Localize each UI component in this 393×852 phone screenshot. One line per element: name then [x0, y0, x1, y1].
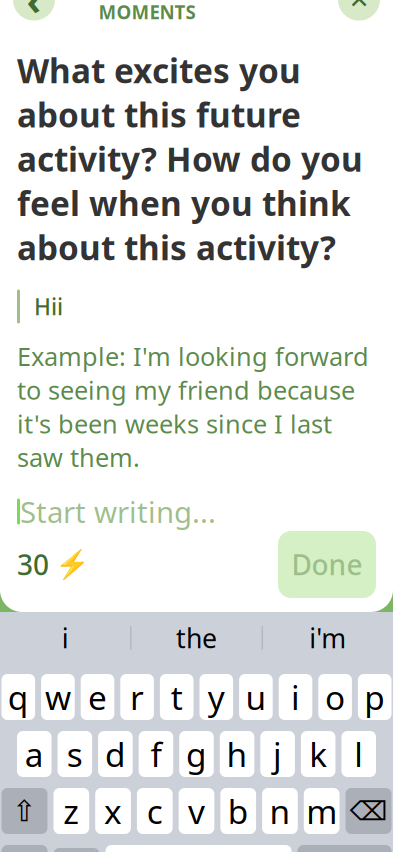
button[interactable]: j: [260, 731, 295, 777]
button[interactable]: l: [341, 731, 376, 777]
staticText: ⌫: [349, 796, 387, 826]
button[interactable]: w: [41, 674, 75, 720]
button[interactable]: Shift: [1, 788, 47, 834]
button[interactable]: 123: [1, 845, 47, 852]
button[interactable]: m: [304, 788, 339, 834]
staticText: r: [130, 675, 144, 719]
staticText: f: [150, 732, 161, 776]
button[interactable]: a: [17, 731, 52, 777]
button[interactable]: q: [1, 674, 35, 720]
staticText: l: [354, 732, 363, 776]
staticText: y: [208, 675, 225, 719]
staticText: z: [63, 789, 79, 833]
staticText: v: [188, 789, 205, 833]
staticText: i: [291, 675, 300, 719]
staticText: i'm: [309, 620, 346, 656]
button[interactable]: r: [120, 674, 154, 720]
button[interactable]: c: [137, 788, 173, 834]
staticText: Hii: [34, 291, 63, 321]
staticText: p: [364, 675, 385, 719]
button[interactable]: d: [98, 731, 133, 777]
staticText: w: [45, 675, 71, 719]
button[interactable]: Emoji: [53, 848, 99, 852]
staticText: e: [88, 675, 107, 719]
staticText: Example: I'm looking forward to seeing m…: [17, 339, 369, 474]
staticText: q: [8, 675, 29, 719]
staticText: What excites you about this future activ…: [17, 48, 363, 269]
button[interactable]: t: [160, 674, 193, 720]
button[interactable]: h: [220, 731, 254, 777]
staticText: the: [176, 620, 217, 656]
staticText: Start writing...: [20, 492, 216, 531]
button[interactable]: e: [81, 674, 114, 720]
staticText: m: [306, 789, 337, 833]
staticText: c: [147, 789, 163, 833]
button[interactable]: Close: [338, 0, 380, 21]
button[interactable]: g: [179, 731, 214, 777]
staticText: s: [67, 732, 83, 776]
button[interactable]: k: [301, 731, 335, 777]
staticText: ⇧: [12, 794, 37, 828]
staticText: ✕: [348, 0, 369, 14]
staticText: n: [269, 789, 290, 833]
button[interactable]: z: [53, 788, 89, 834]
staticText: h: [227, 732, 248, 776]
button[interactable]: Delete: [345, 788, 391, 834]
button[interactable]: return: [297, 845, 391, 852]
button[interactable]: i: [0, 612, 130, 664]
button[interactable]: the: [131, 612, 262, 664]
button[interactable]: i'm: [263, 612, 393, 664]
button[interactable]: f: [139, 731, 173, 777]
button[interactable]: n: [262, 788, 298, 834]
staticText: k: [309, 732, 327, 776]
button[interactable]: i: [279, 674, 312, 720]
staticText: ‹: [26, 0, 41, 26]
staticText: j: [273, 732, 282, 776]
staticText: t: [171, 675, 183, 719]
button[interactable]: b: [220, 788, 256, 834]
button[interactable]: p: [358, 674, 391, 720]
staticText: i: [62, 620, 69, 656]
staticText: SAVORING PLEASANT MOMENTS: [98, 0, 294, 24]
staticText: b: [228, 789, 249, 833]
button[interactable]: o: [318, 674, 352, 720]
staticText: g: [186, 732, 207, 776]
button[interactable]: u: [239, 674, 273, 720]
button[interactable]: Done: [278, 531, 376, 598]
button[interactable]: v: [179, 788, 214, 834]
staticText: d: [105, 732, 126, 776]
button[interactable]: y: [199, 674, 233, 720]
staticText: u: [245, 675, 266, 719]
staticText: x: [104, 789, 122, 833]
staticText: 30: [17, 546, 49, 583]
staticText: o: [325, 675, 345, 719]
staticText: ⚡: [55, 548, 90, 580]
button[interactable]: Back: [13, 0, 55, 26]
staticText: Done: [291, 546, 362, 583]
button[interactable]: Space: [105, 845, 291, 852]
button[interactable]: s: [58, 731, 92, 777]
staticText: a: [25, 732, 44, 776]
button[interactable]: x: [95, 788, 131, 834]
